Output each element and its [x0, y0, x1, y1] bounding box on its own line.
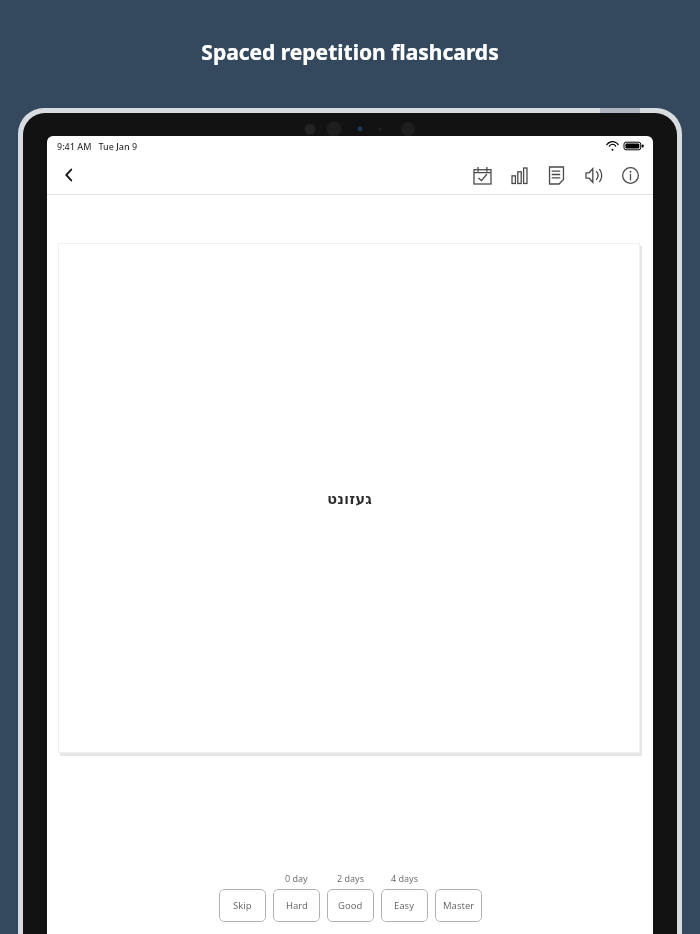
button[interactable]: Notes — [543, 162, 569, 188]
button[interactable]: Schedule — [469, 162, 495, 188]
button[interactable]: Good — [327, 889, 374, 922]
button[interactable]: Statistics — [506, 162, 532, 188]
button[interactable]: Hard — [273, 889, 320, 922]
button[interactable]: Skip — [219, 889, 266, 922]
staticText: Good — [338, 899, 363, 912]
staticText: געזונט — [327, 490, 372, 507]
staticText: 9:41 AM Tue Jan 9 — [57, 140, 138, 152]
staticText: Skip — [233, 899, 252, 912]
staticText: 2 days — [337, 872, 364, 884]
staticText: Hard — [286, 899, 308, 912]
button[interactable]: געזונט — [58, 243, 640, 753]
staticText: 4 days — [391, 872, 418, 884]
staticText: Easy — [394, 899, 415, 912]
button[interactable]: Info — [617, 162, 643, 188]
staticText: 0 day — [285, 872, 308, 884]
button[interactable]: Master — [435, 889, 482, 922]
staticText: Spaced repetition flashcards — [0, 38, 700, 67]
button[interactable]: Back — [53, 159, 85, 191]
button[interactable]: Easy — [381, 889, 428, 922]
staticText: Master — [443, 899, 475, 912]
button[interactable]: Sound — [580, 162, 606, 188]
